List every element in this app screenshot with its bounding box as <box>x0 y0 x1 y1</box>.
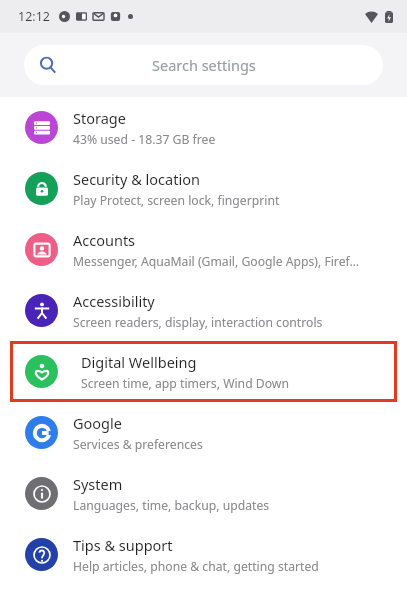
staticText: Services & preferences <box>73 436 203 453</box>
staticText: 43% used - 18.37 GB free <box>73 131 216 148</box>
staticText: Security & location <box>73 169 200 189</box>
staticText: Languages, time, backup, updates <box>73 497 270 514</box>
button[interactable]: Digital Wellbeing <box>10 341 397 402</box>
staticText: Screen time, app timers, Wind Down <box>81 375 289 392</box>
button[interactable]: Accessibility <box>0 280 407 341</box>
other: Search <box>39 56 57 74</box>
staticText: Tips & support <box>73 535 173 555</box>
button[interactable]: Search <box>24 45 383 85</box>
button[interactable]: System <box>0 463 407 524</box>
staticText: Accounts <box>73 230 136 250</box>
button[interactable]: Security & location <box>0 158 407 219</box>
button[interactable]: Storage <box>0 97 407 158</box>
staticText: Accessibility <box>73 291 155 311</box>
staticText: Digital Wellbeing <box>81 352 197 372</box>
staticText: Google <box>73 413 122 433</box>
staticText: Storage <box>73 108 126 128</box>
staticText: Screen readers, display, interaction con… <box>73 314 323 331</box>
staticText: Help articles, phone & chat, getting sta… <box>73 558 319 575</box>
staticText: 12:12 <box>18 8 50 25</box>
button[interactable]: Google <box>0 402 407 463</box>
staticText: System <box>73 474 123 494</box>
staticText: Search settings <box>152 55 256 75</box>
staticText: Messenger, AquaMail (Gmail, Google Apps)… <box>73 253 360 270</box>
staticText: Play Protect, screen lock, fingerprint <box>73 192 280 209</box>
button[interactable]: Accounts <box>0 219 407 280</box>
button[interactable]: Tips & support <box>0 524 407 585</box>
